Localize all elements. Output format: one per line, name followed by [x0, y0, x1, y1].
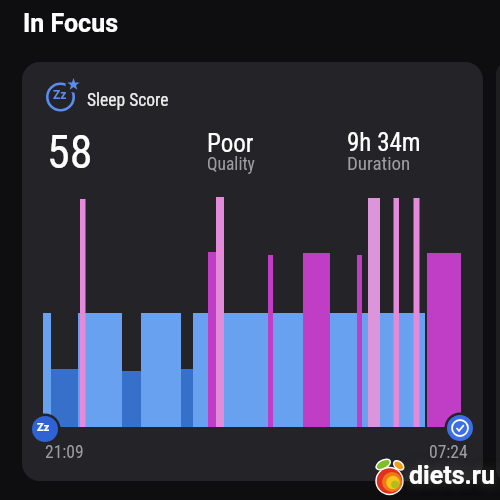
staticText: Zz — [37, 421, 50, 434]
staticText: diets.ru — [409, 461, 495, 490]
staticText: 07:24 — [429, 442, 468, 463]
staticText: 58 — [47, 125, 93, 179]
staticText: Duration — [347, 152, 411, 174]
staticText: 9h 34m — [347, 128, 421, 157]
staticText: In Focus — [23, 9, 119, 38]
button[interactable]: Zz — [22, 62, 483, 481]
staticText: Zz — [53, 88, 67, 102]
staticText: Quality — [207, 154, 255, 175]
staticText: 21:09 — [45, 442, 84, 463]
staticText: Sleep Score — [87, 90, 169, 111]
staticText: Poor — [207, 129, 254, 158]
